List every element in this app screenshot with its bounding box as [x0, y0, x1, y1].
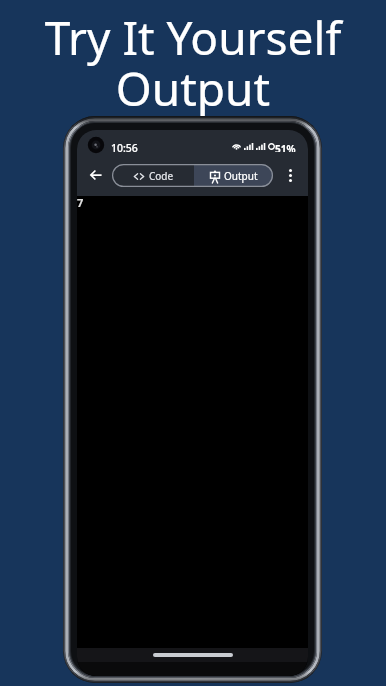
button[interactable]: Back [86, 165, 106, 185]
button[interactable]: Output [194, 164, 273, 187]
staticText: Output [224, 169, 258, 183]
staticText: 10:56 [111, 141, 138, 155]
staticText: Code [149, 169, 174, 183]
staticText: Try It Yourself Output [0, 6, 386, 120]
button[interactable]: Code [112, 164, 194, 187]
staticText: 51% [275, 142, 296, 152]
staticText: 7 [77, 195, 84, 210]
button[interactable]: More options [281, 166, 299, 184]
